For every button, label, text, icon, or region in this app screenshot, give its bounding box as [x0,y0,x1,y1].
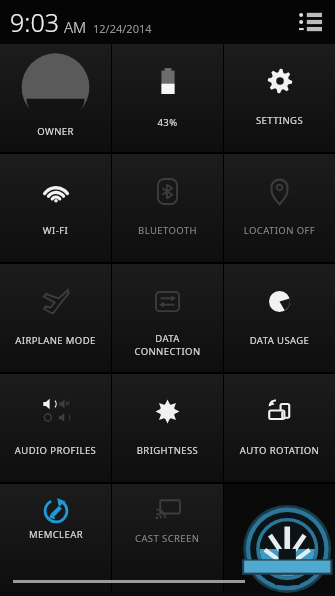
staticText: OWNER [0,125,111,138]
staticText: DATA USAGE [226,334,333,347]
staticText: 43% [114,116,221,129]
button[interactable]: CAST SCREEN [112,484,223,592]
button[interactable]: BRIGHTNESS [112,374,223,482]
staticText: AUTO ROTATION [226,444,333,457]
button[interactable]: SETTINGS [224,44,335,152]
staticText: 9:03 [10,5,59,39]
button[interactable]: BLUETOOTH [112,154,223,262]
button[interactable]: MEMCLEAR [0,484,111,592]
staticText: BRIGHTNESS [114,444,221,457]
staticText: 12/24/2014 [93,21,152,36]
staticText: DATA CONNECTION [114,332,221,358]
staticText: BLUETOOTH [114,224,221,237]
button[interactable]: AUDIO PROFILES [0,374,111,482]
staticText: CAST SCREEN [135,532,200,545]
staticText: LOCATION OFF [226,224,333,237]
staticText: AM [64,17,87,37]
button[interactable]: WI-FI [0,154,111,262]
staticText: WI-FI [2,224,109,237]
button[interactable]: AUTO ROTATION [224,374,335,482]
button[interactable]: DATA CONNECTION [112,264,223,372]
staticText: MEMCLEAR [29,528,83,541]
staticText: AUDIO PROFILES [2,444,109,457]
button[interactable]: AIRPLANE MODE [0,264,111,372]
button[interactable]: 43% [112,44,223,152]
button[interactable]: LOCATION OFF [224,154,335,262]
button[interactable]: Quick settings list [293,5,327,39]
button[interactable]: DATA USAGE [224,264,335,372]
button[interactable]: OWNER [0,44,111,152]
staticText: AIRPLANE MODE [2,334,109,347]
staticText: SETTINGS [226,114,333,127]
